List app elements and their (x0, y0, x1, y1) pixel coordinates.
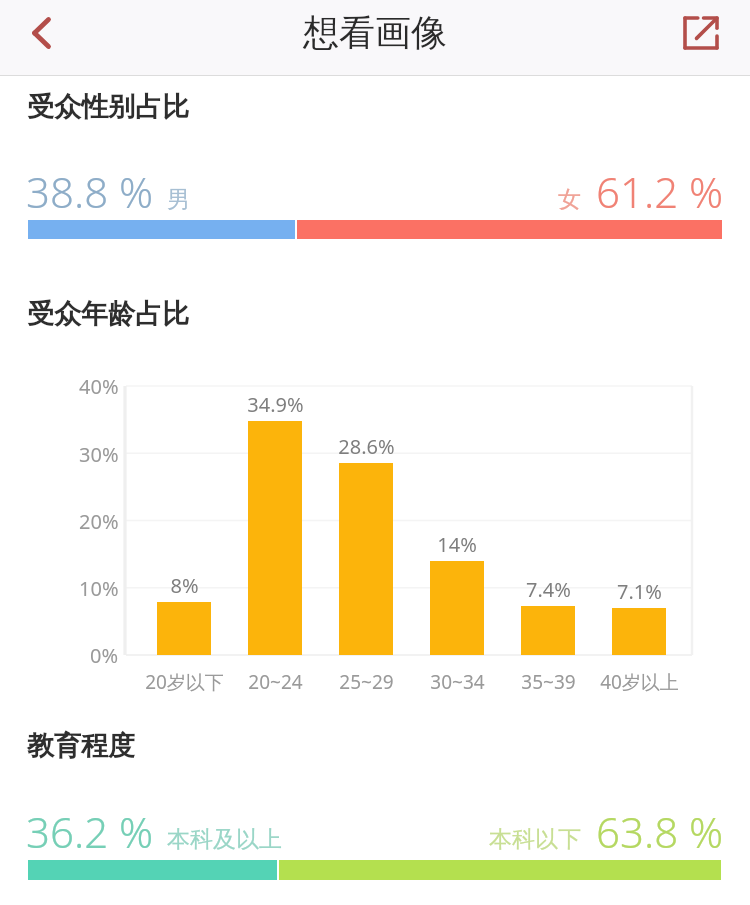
staticText: 61.2 % (596, 163, 724, 220)
staticText: 教育程度 (27, 729, 135, 763)
button[interactable]: Open in new window (669, 1, 733, 65)
staticText: 38.8 % (26, 163, 154, 220)
staticText: 20% (79, 508, 119, 535)
staticText: 36.2 % (26, 803, 154, 860)
staticText: 40岁以上 (600, 669, 679, 695)
staticText: 想看画像 (303, 10, 447, 55)
staticText: 40% (79, 373, 119, 400)
staticText: 7.1% (617, 578, 662, 605)
staticText: 20~24 (248, 669, 303, 695)
staticText: 男 (167, 185, 190, 214)
staticText: 受众年龄占比 (27, 297, 189, 331)
staticText: 14% (437, 531, 477, 558)
staticText: 28.6% (338, 433, 395, 460)
staticText: 35~39 (521, 669, 576, 695)
staticText: 30% (79, 441, 119, 468)
staticText: 女 (558, 185, 581, 214)
button[interactable]: Back (9, 1, 73, 65)
staticText: 8% (170, 572, 199, 599)
staticText: 30~34 (430, 669, 485, 695)
staticText: 20岁以下 (145, 669, 224, 695)
staticText: 63.8 % (596, 803, 724, 860)
staticText: 10% (79, 575, 119, 602)
staticText: 25~29 (339, 669, 394, 695)
staticText: 0% (90, 642, 119, 669)
staticText: 7.4% (526, 576, 571, 603)
staticText: 受众性别占比 (27, 90, 189, 124)
staticText: 本科以下 (489, 825, 581, 854)
staticText: 本科及以上 (167, 825, 282, 854)
staticText: 34.9% (247, 391, 304, 418)
